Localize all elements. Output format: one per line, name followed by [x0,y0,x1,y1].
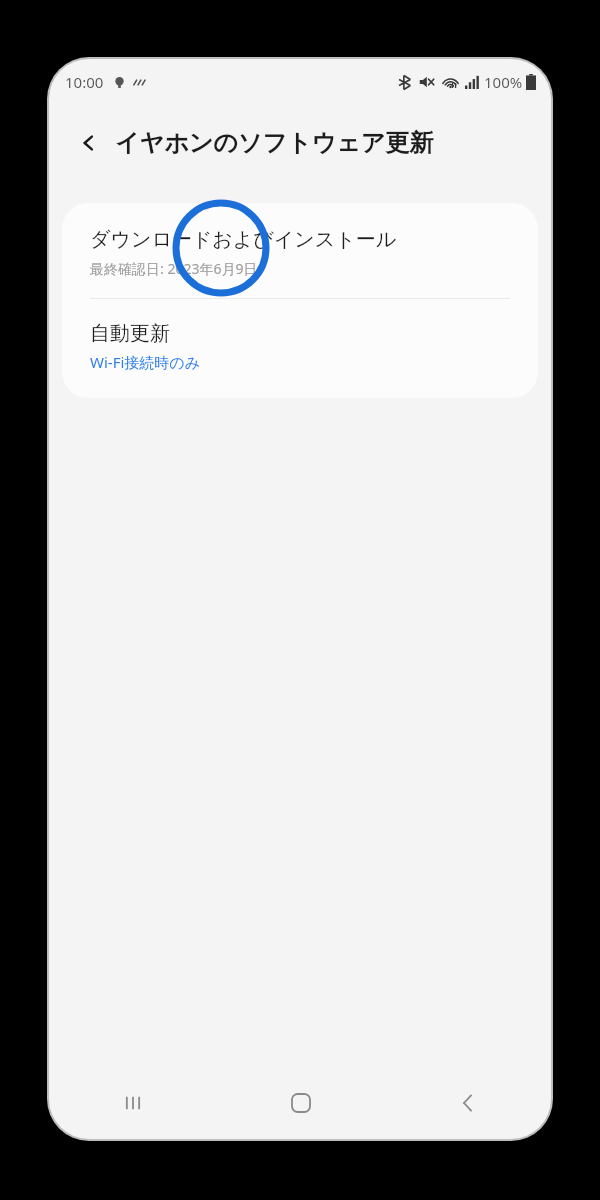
staticText: ダウンロードおよびインストール [90,227,397,252]
button[interactable]: Back [384,1067,551,1139]
button[interactable]: ダウンロードおよびインストール [62,203,538,298]
staticText: 10:00 [65,72,104,92]
button[interactable]: 自動更新 [62,299,538,398]
staticText: Wi-Fi接続時のみ [90,352,201,372]
staticText: 100% [484,72,523,92]
staticText: イヤホンのソフトウェア更新 [115,128,434,158]
staticText: 最終確認日: 2023年6月9日 [90,259,258,278]
button[interactable]: Home [217,1067,384,1139]
button[interactable]: Back [69,123,109,163]
button[interactable]: Recents [49,1067,217,1139]
staticText: 自動更新 [90,321,170,346]
